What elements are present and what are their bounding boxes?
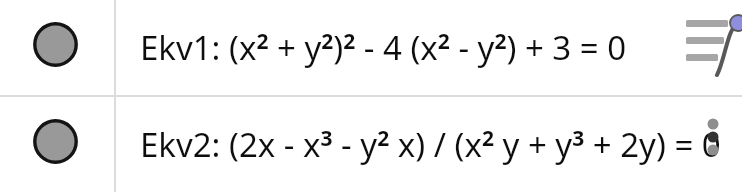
button[interactable]: Graphing view bbox=[667, 0, 742, 79]
button[interactable]: Toggle visibility bbox=[33, 119, 78, 164]
button[interactable]: More options bbox=[701, 113, 725, 159]
button[interactable]: Toggle visibility bbox=[33, 22, 78, 67]
staticText: Ekv1: (x2 + y2)2 - 4 (x2 - y2) + 3 = 0 bbox=[140, 25, 627, 70]
staticText: Ekv2: (2x - x3 - y2 x) / (x2 y + y3 + 2y… bbox=[140, 122, 721, 167]
